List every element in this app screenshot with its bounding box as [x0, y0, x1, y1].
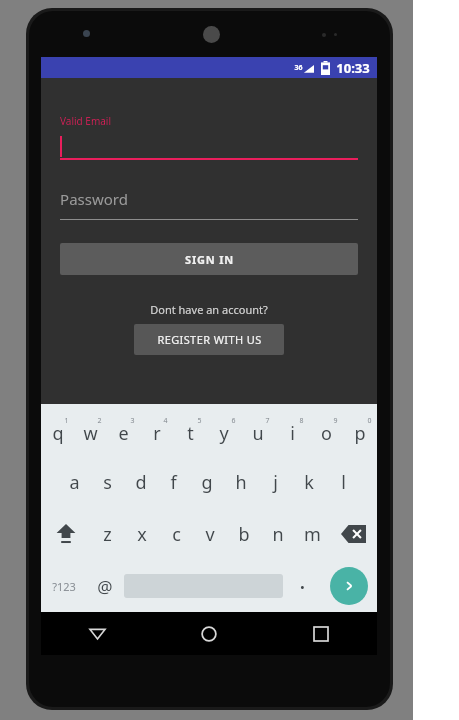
staticText: Dont have an account?: [150, 302, 268, 317]
staticText: z: [103, 522, 112, 547]
button[interactable]: Shift: [41, 508, 90, 560]
button[interactable]: Back: [41, 612, 153, 655]
button[interactable]: REGISTER WITH US: [134, 324, 284, 355]
button[interactable]: 5: [173, 404, 207, 456]
button[interactable]: At sign: [87, 560, 122, 612]
staticText: r: [153, 421, 161, 446]
staticText: w: [83, 421, 98, 446]
staticText: .: [300, 571, 305, 594]
button[interactable]: Backspace: [329, 508, 377, 560]
button[interactable]: 0: [343, 404, 377, 456]
button[interactable]: d: [124, 456, 157, 508]
staticText: REGISTER WITH US: [157, 332, 262, 347]
staticText: u: [252, 421, 264, 446]
button[interactable]: j: [258, 456, 292, 508]
button[interactable]: x: [125, 508, 159, 560]
button[interactable]: a: [58, 456, 91, 508]
staticText: 7: [265, 416, 270, 426]
staticText: s: [103, 470, 112, 495]
staticText: @: [97, 575, 113, 598]
button[interactable]: l: [326, 456, 360, 508]
staticText: 5: [197, 416, 202, 426]
button[interactable]: g: [190, 456, 224, 508]
staticText: x: [137, 522, 147, 547]
staticText: b: [238, 522, 250, 547]
staticText: 8: [299, 416, 304, 426]
staticText: l: [341, 470, 346, 495]
staticText: q: [52, 421, 64, 446]
button[interactable]: z: [90, 508, 125, 560]
staticText: v: [205, 522, 215, 547]
staticText: Password: [60, 189, 128, 209]
button[interactable]: .: [285, 560, 320, 612]
button[interactable]: n: [261, 508, 295, 560]
staticText: 36: [294, 63, 303, 73]
staticText: y: [219, 421, 229, 446]
button[interactable]: Password: [60, 186, 358, 220]
button[interactable]: 2: [74, 404, 107, 456]
staticText: Valid Email: [60, 114, 111, 128]
button[interactable]: Recents: [265, 612, 377, 655]
button[interactable]: 1: [41, 404, 74, 456]
button[interactable]: s: [91, 456, 124, 508]
staticText: h: [235, 470, 247, 495]
staticText: 2: [97, 416, 102, 426]
staticText: 4: [163, 416, 168, 426]
button[interactable]: Home: [153, 612, 265, 655]
button[interactable]: c: [159, 508, 193, 560]
button[interactable]: Enter: [320, 560, 377, 612]
staticText: n: [272, 522, 284, 547]
staticText: 0: [367, 416, 372, 426]
staticText: 3: [130, 416, 135, 426]
staticText: d: [135, 470, 147, 495]
button[interactable]: 8: [275, 404, 309, 456]
staticText: 9: [333, 416, 338, 426]
button[interactable]: h: [224, 456, 258, 508]
button[interactable]: 7: [241, 404, 275, 456]
button[interactable]: 3: [107, 404, 140, 456]
staticText: c: [172, 522, 181, 547]
staticText: k: [304, 470, 314, 495]
button[interactable]: ?123: [41, 560, 87, 612]
staticText: o: [321, 421, 332, 446]
staticText: g: [201, 470, 213, 495]
button[interactable]: 6: [207, 404, 241, 456]
staticText: t: [187, 421, 194, 446]
button[interactable]: b: [227, 508, 261, 560]
staticText: f: [170, 470, 177, 495]
staticText: 1: [64, 416, 69, 426]
button[interactable]: 4: [140, 404, 173, 456]
staticText: p: [354, 421, 366, 446]
staticText: j: [273, 470, 278, 495]
staticText: ?123: [52, 579, 76, 594]
button[interactable]: 9: [309, 404, 343, 456]
button[interactable]: k: [292, 456, 326, 508]
staticText: e: [118, 421, 129, 446]
staticText: a: [69, 470, 80, 495]
staticText: SIGN IN: [185, 252, 234, 267]
button[interactable]: v: [193, 508, 227, 560]
staticText: 10:33: [336, 59, 370, 77]
button[interactable]: SIGN IN: [60, 243, 358, 275]
staticText: 6: [231, 416, 236, 426]
staticText: i: [290, 421, 295, 446]
button[interactable]: m: [295, 508, 329, 560]
button[interactable]: f: [157, 456, 190, 508]
staticText: m: [304, 522, 321, 547]
